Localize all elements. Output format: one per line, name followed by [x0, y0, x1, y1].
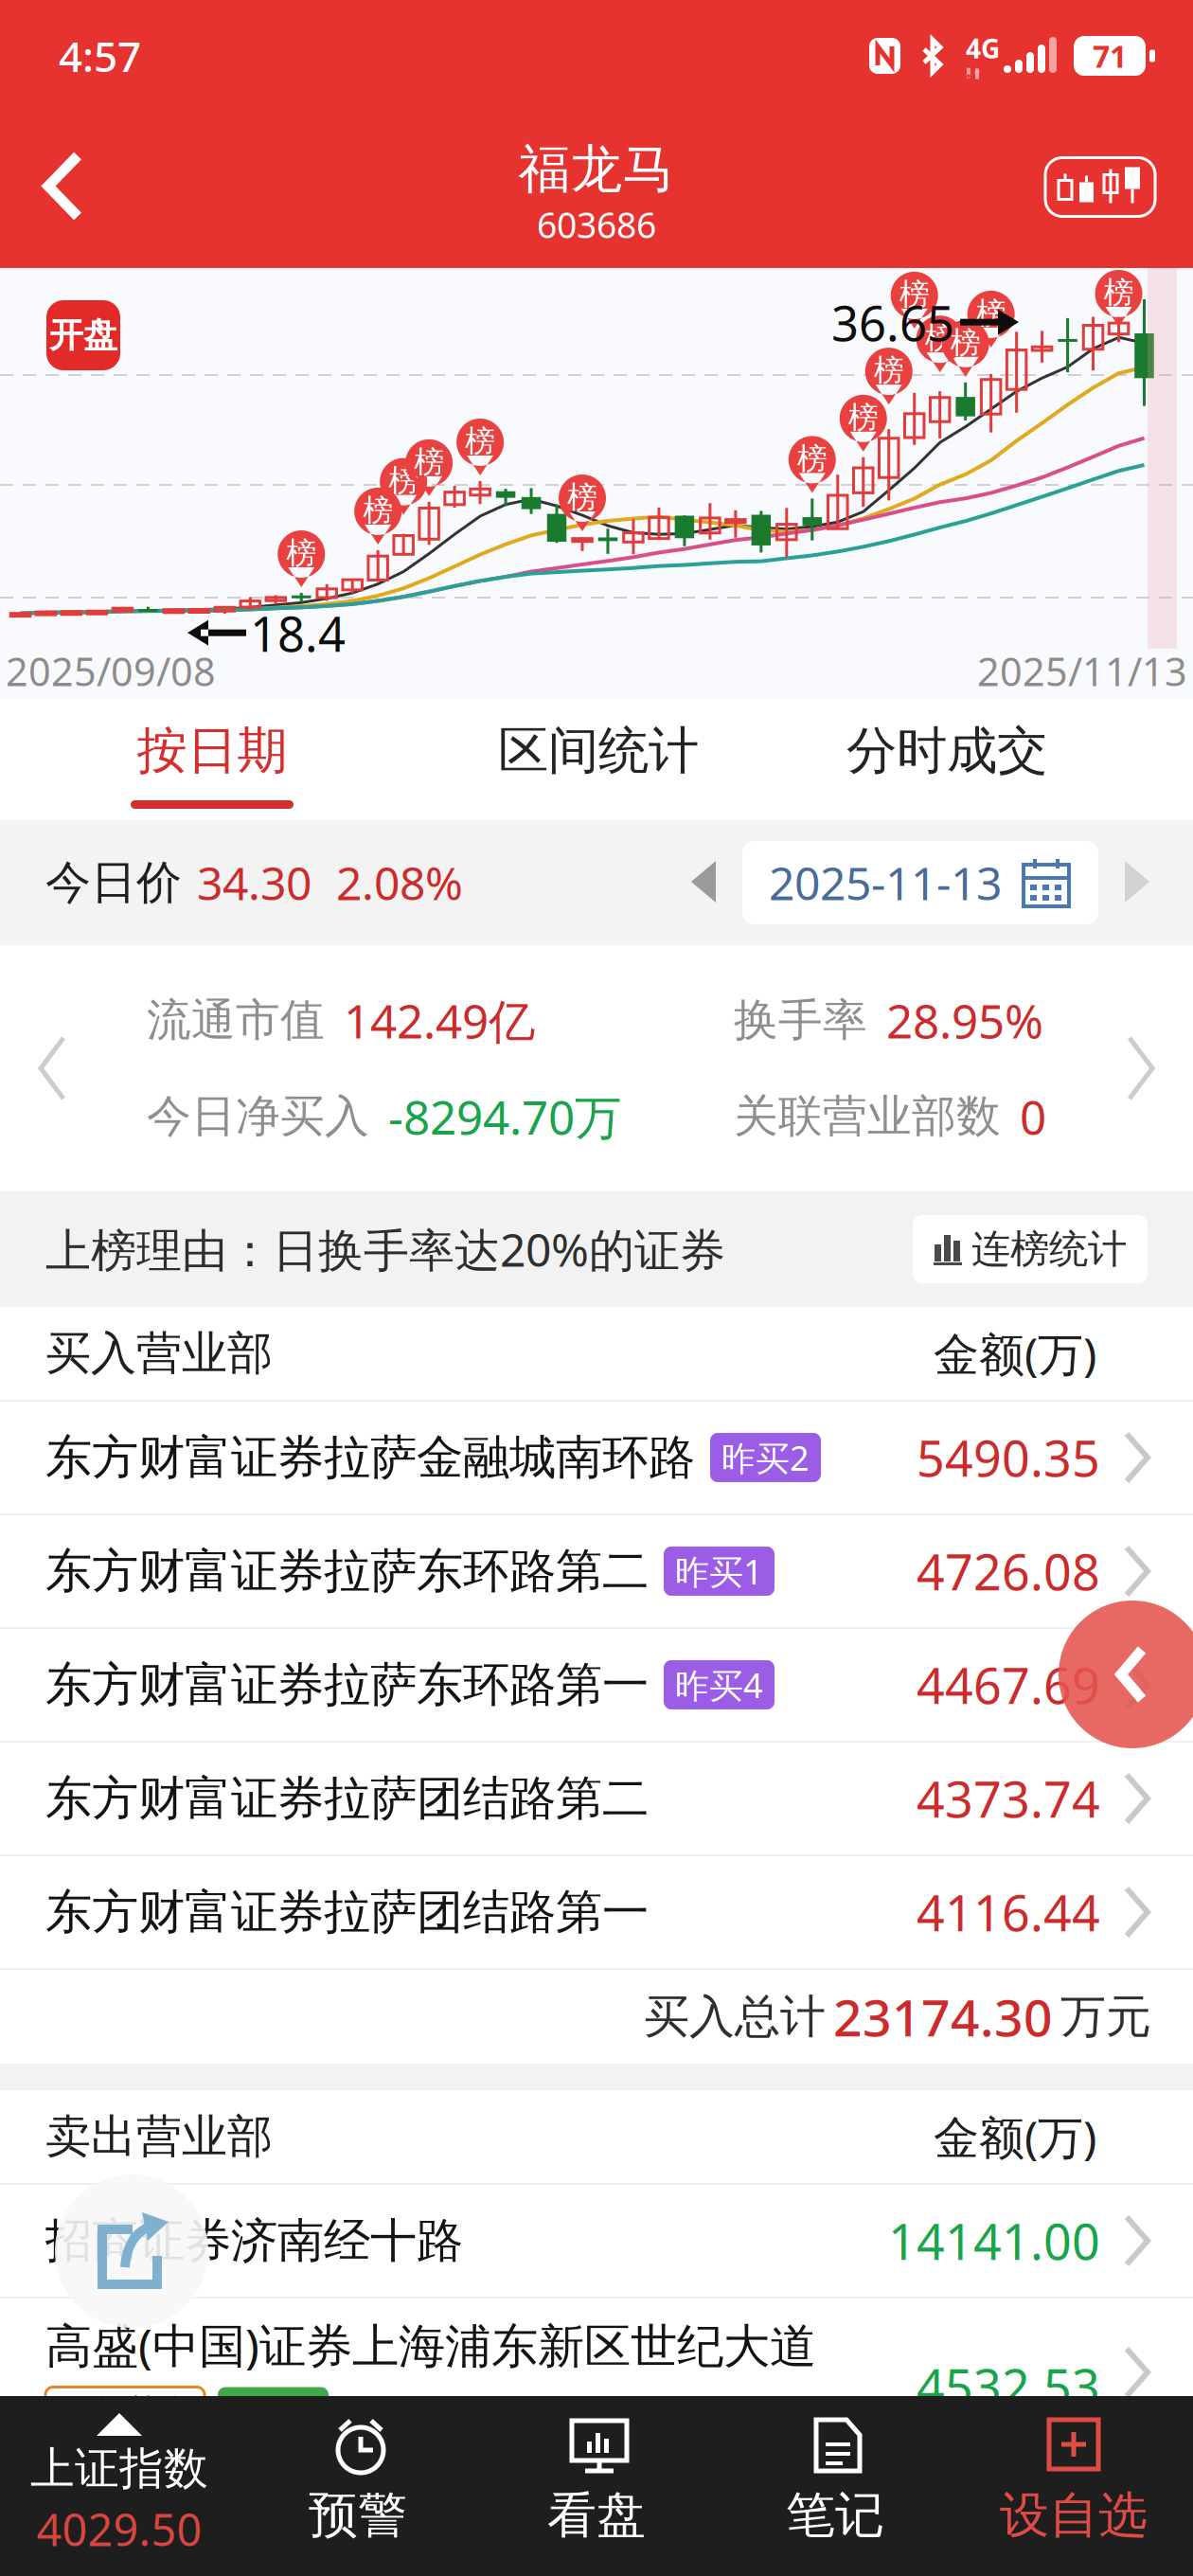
staticText: 东方财富证券拉萨团结路第一: [45, 1883, 649, 1941]
staticText: 4726.08: [917, 1538, 1100, 1604]
button[interactable]: Next day: [1098, 859, 1174, 906]
staticText: 28.95%: [886, 989, 1043, 1051]
button[interactable]: 高盛(中国)证券上海浦东新区世纪大道: [0, 2299, 1193, 2478]
staticText: 今日价: [45, 855, 182, 911]
staticText: 流通市值: [147, 993, 325, 1047]
button[interactable]: 东方财富证券拉萨东环路第二: [0, 1515, 1193, 1629]
staticText: 榜: [1104, 274, 1134, 311]
staticText: 关联营业部数: [734, 1089, 1001, 1143]
staticText: 设自选: [1000, 2485, 1148, 2546]
staticText: 榜: [925, 320, 955, 357]
staticText: 34.30: [197, 852, 312, 913]
button[interactable]: Chart view: [1045, 124, 1193, 250]
button[interactable]: 上证指数: [0, 2396, 239, 2576]
button[interactable]: Back: [0, 125, 121, 249]
staticText: 2025-11-13: [769, 852, 1002, 913]
staticText: 4:57: [59, 28, 141, 84]
staticText: 榜: [899, 276, 929, 313]
staticText: 买入营业部: [45, 1325, 273, 1381]
button[interactable]: 招商证券济南经十路: [0, 2185, 1193, 2299]
staticText: 36.65: [831, 291, 954, 354]
button[interactable]: 预警: [239, 2396, 477, 2576]
staticText: 东方财富证券拉萨团结路第二: [45, 1770, 649, 1827]
button[interactable]: 连榜统计: [913, 1215, 1148, 1283]
staticText: 603686: [537, 201, 656, 248]
button[interactable]: 2025-11-13: [742, 841, 1098, 924]
staticText: 招商证券济南经十路: [45, 2212, 463, 2269]
staticText: 换手率: [734, 993, 867, 1047]
staticText: 按日期: [137, 720, 287, 782]
button[interactable]: 按日期: [0, 699, 424, 820]
staticText: 榜: [388, 462, 419, 499]
button[interactable]: 东方财富证券拉萨团结路第二: [0, 1743, 1193, 1856]
staticText: 昨卖2: [229, 2389, 317, 2434]
button[interactable]: Previous day: [667, 859, 742, 906]
staticText: 卖出营业部: [45, 2109, 273, 2165]
staticText: 4116.44: [917, 1879, 1100, 1945]
staticText: 榜: [976, 295, 1006, 332]
staticText: 2.08%: [336, 852, 463, 913]
staticText: 榜: [414, 443, 444, 481]
staticText: 榜: [363, 492, 393, 529]
staticText: 昨买2: [721, 1435, 810, 1480]
staticText: 14141.00: [888, 2208, 1100, 2274]
staticText: 东方财富证券拉萨金融城南环路: [45, 1429, 695, 1486]
staticText: 连榜统计: [971, 1225, 1127, 1273]
staticText: 榜: [286, 535, 316, 572]
staticText: 量化基金: [57, 2391, 193, 2433]
staticText: 18.4: [250, 601, 346, 665]
staticText: 2025/11/13: [977, 645, 1187, 697]
staticText: 开盘: [49, 314, 117, 356]
staticText: 福龙马: [518, 137, 675, 201]
staticText: 榜: [950, 324, 981, 361]
staticText: 5490.35: [917, 1425, 1100, 1490]
staticText: 23174.30: [833, 1983, 1053, 2050]
button[interactable]: Next: [1113, 1034, 1193, 1102]
button[interactable]: 区间统计: [424, 699, 773, 820]
staticText: 2025/09/08: [6, 645, 216, 697]
staticText: 区间统计: [498, 720, 699, 782]
staticText: 高盛(中国)证券上海浦东新区世纪大道: [45, 2314, 816, 2376]
button[interactable]: 东方财富证券拉萨团结路第一: [0, 1856, 1193, 1970]
staticText: 分时成交: [846, 720, 1047, 782]
staticText: 榜: [465, 423, 495, 460]
button[interactable]: 分时成交: [773, 699, 1121, 820]
button[interactable]: Previous: [0, 1034, 80, 1102]
staticText: 榜: [797, 440, 827, 477]
staticText: 上榜理由：日换手率达20%的证券: [45, 1219, 725, 1279]
staticText: 4532.53: [917, 2353, 1100, 2419]
button[interactable]: 东方财富证券拉萨东环路第一: [0, 1629, 1193, 1743]
button[interactable]: 设自选: [954, 2396, 1193, 2576]
staticText: 东方财富证券拉萨东环路第一: [45, 1656, 649, 1714]
button[interactable]: 看盘: [477, 2396, 716, 2576]
staticText: 榜: [874, 352, 904, 389]
staticText: 142.49亿: [344, 989, 535, 1051]
staticText: 0: [1020, 1085, 1046, 1147]
staticText: 上证指数: [30, 2442, 208, 2496]
staticText: 71: [1093, 36, 1127, 76]
staticText: 昨买4: [675, 1662, 763, 1707]
staticText: 笔记: [786, 2485, 884, 2546]
staticText: 预警: [309, 2485, 407, 2546]
staticText: 昨买1: [675, 1549, 763, 1594]
staticText: -8294.70万: [388, 1085, 621, 1147]
staticText: 4G: [966, 31, 1000, 66]
button[interactable]: 东方财富证券拉萨金融城南环路: [0, 1402, 1193, 1515]
staticText: 金额(万): [934, 1323, 1096, 1383]
staticText: 4467.69: [917, 1652, 1100, 1718]
staticText: 东方财富证券拉萨东环路第二: [45, 1542, 649, 1600]
button[interactable]: Collapse panel: [1059, 1601, 1193, 1748]
staticText: 4373.74: [917, 1766, 1100, 1831]
button[interactable]: 笔记: [716, 2396, 954, 2576]
staticText: 看盘: [547, 2485, 646, 2546]
staticText: 榜: [848, 399, 878, 436]
staticText: 今日净买入: [147, 1089, 369, 1143]
staticText: 榜: [567, 479, 597, 516]
staticText: 万元: [1060, 1989, 1151, 2045]
staticText: 买入总计: [644, 1989, 826, 2045]
button[interactable]: Share: [55, 2174, 208, 2328]
staticText: 4029.50: [36, 2500, 202, 2558]
staticText: 金额(万): [934, 2106, 1096, 2167]
